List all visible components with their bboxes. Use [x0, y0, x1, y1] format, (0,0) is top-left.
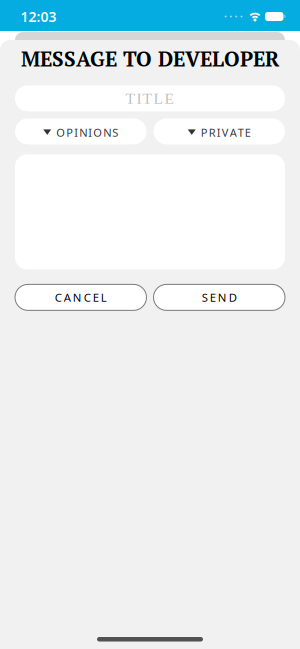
staticText: O P I N I O N S: [56, 125, 118, 140]
staticText: T I T L E: [125, 90, 174, 107]
staticText: S E N D: [202, 290, 237, 305]
staticText: 12:03: [20, 7, 56, 26]
button[interactable]: C A N C E L: [15, 284, 146, 310]
button[interactable]: O P I N I O N S: [15, 118, 146, 144]
button[interactable]: S E N D: [153, 284, 285, 310]
staticText: C A N C E L: [55, 290, 107, 305]
staticText: P R I V A T E: [201, 125, 251, 140]
button[interactable]: P R I V A T E: [153, 118, 285, 144]
button[interactable]: T I T L E: [15, 85, 285, 111]
staticText: MESSAGE TO DEVELOPER: [21, 45, 279, 72]
